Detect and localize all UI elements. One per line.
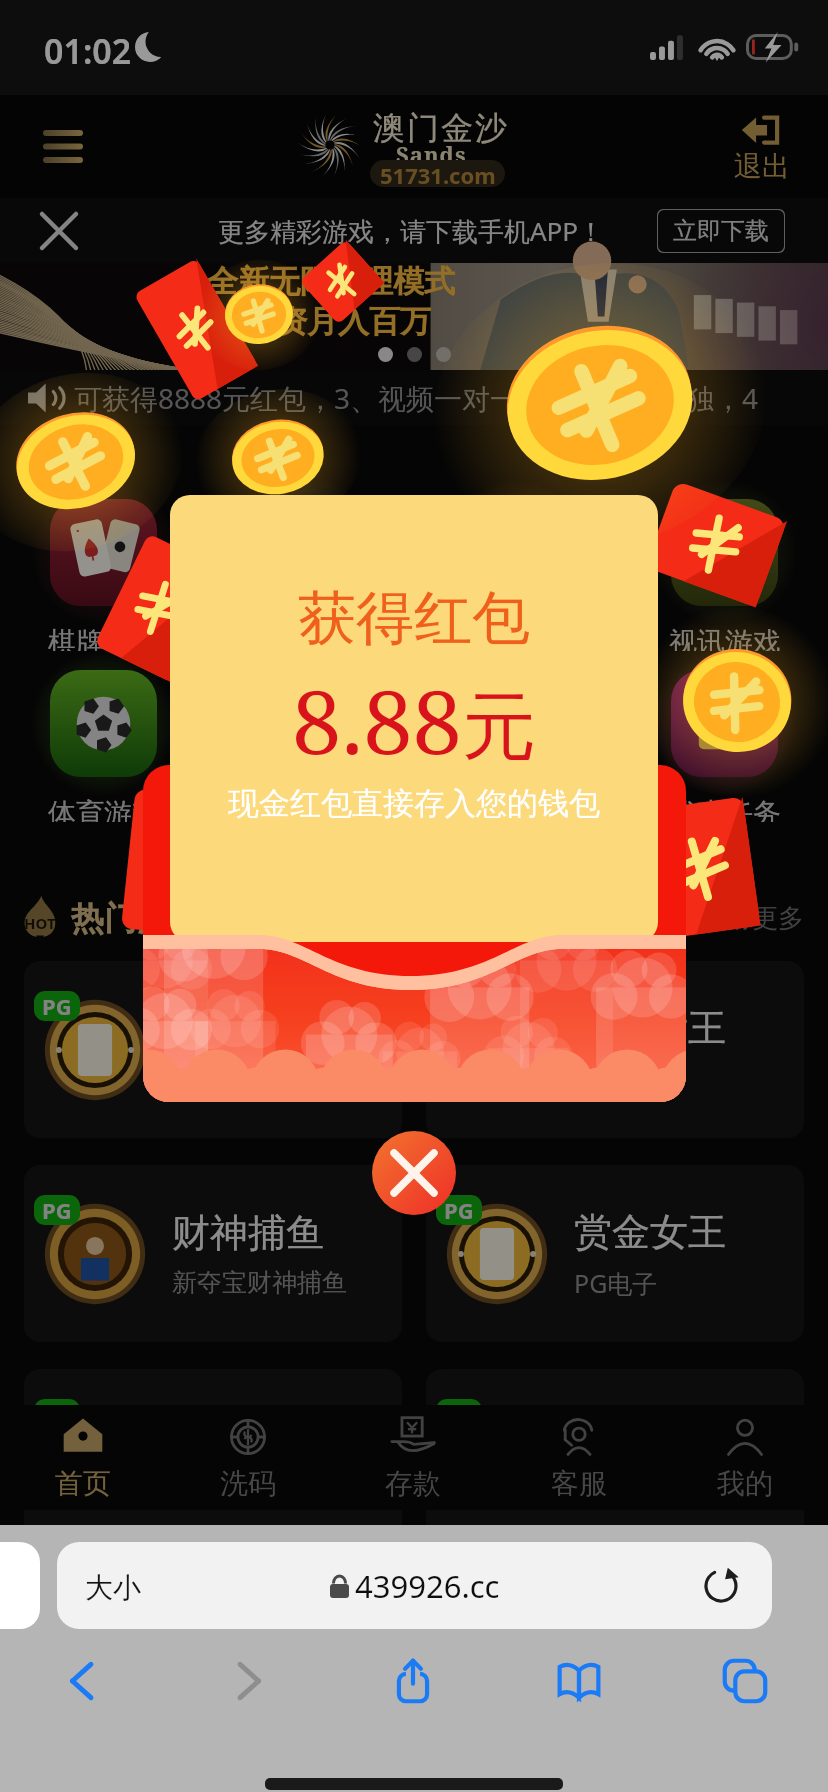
button[interactable]: 客服 <box>496 1405 662 1510</box>
staticText: 右滑更多 <box>700 902 804 935</box>
staticText: 客服 <box>551 1466 607 1501</box>
button[interactable]: Tabs <box>707 1643 783 1719</box>
staticText: 更多精彩游戏，请下载手机APP！ <box>218 213 605 249</box>
staticText: 优惠任务 <box>669 796 781 822</box>
staticText: 51731.com <box>380 160 496 187</box>
staticText: PG <box>42 991 72 1021</box>
button[interactable]: 洗码 <box>165 1405 330 1510</box>
staticText: PG <box>444 991 474 1021</box>
staticText: PG <box>42 1195 72 1225</box>
staticText: 获得红包 <box>298 582 530 655</box>
button[interactable]: PG <box>426 1165 804 1342</box>
button[interactable]: 我的 <box>662 1405 828 1510</box>
staticText: PG电子 <box>172 1470 256 1504</box>
staticText: 439926.cc <box>355 1565 500 1607</box>
staticText: 糖果派对 <box>172 1412 324 1460</box>
staticText: 8.88 <box>292 660 462 780</box>
staticText: 存款 <box>385 1466 441 1501</box>
staticText: 投资月入百万 <box>245 302 431 341</box>
staticText: 赏金女王 <box>574 1208 726 1256</box>
staticText: 澳门金沙 <box>372 108 508 148</box>
staticText: 彩票游戏 <box>462 625 574 651</box>
button[interactable]: 视讯游戏 <box>621 480 828 651</box>
staticText: 财神捕鱼 <box>172 1209 324 1257</box>
staticText: 新夺宝财神捕鱼 <box>172 1267 347 1298</box>
button[interactable]: 捕鱼游戏 <box>207 651 414 822</box>
button[interactable]: 电子游戏 <box>207 480 414 651</box>
staticText: 电子游戏 <box>255 625 367 651</box>
staticText: 热门游戏 <box>71 898 203 940</box>
button[interactable]: Bookmarks <box>541 1643 617 1719</box>
staticText: 我的 <box>717 1466 773 1501</box>
button[interactable]: Reload <box>696 1561 746 1611</box>
button[interactable]: 优惠任务 <box>621 651 828 822</box>
button[interactable]: 立即下载 <box>657 209 785 253</box>
button[interactable]: 棋牌游戏 <box>0 480 207 651</box>
staticText: 全新无限代理模式 <box>207 262 455 301</box>
staticText: 赏金女王 <box>574 1004 726 1052</box>
staticText: 代理加盟 <box>462 796 574 822</box>
button[interactable]: 退出 <box>718 109 806 195</box>
staticText: 捕鱼游戏 <box>255 796 367 822</box>
button[interactable]: Share <box>375 1643 451 1719</box>
button[interactable]: 彩票游戏 <box>414 480 621 651</box>
button[interactable]: PG <box>426 1369 804 1546</box>
staticText: 退出 <box>734 149 790 184</box>
staticText: 大小 <box>85 1570 141 1605</box>
button[interactable]: PG <box>426 961 804 1138</box>
button[interactable]: 大小 <box>57 1542 772 1629</box>
staticText: 捕鱼游戏 <box>574 1471 674 1502</box>
staticText: 体育游戏 <box>48 796 160 822</box>
staticText: 首页 <box>55 1466 111 1501</box>
staticText: 麻将胡了 <box>172 1004 324 1052</box>
staticText: PG电子 <box>574 1062 658 1096</box>
staticText: 01:02 <box>44 28 132 74</box>
staticText: 现金红包直接存入您的钱包 <box>228 784 600 823</box>
staticText: PG电子 <box>574 1266 658 1300</box>
button[interactable]: PG <box>24 961 402 1138</box>
button[interactable]: 代理加盟 <box>414 651 621 822</box>
staticText: 棋牌游戏 <box>48 625 160 651</box>
staticText: 视讯游戏 <box>669 625 781 651</box>
staticText: 元 <box>462 681 536 774</box>
staticText: 立即下载 <box>673 216 769 246</box>
button[interactable]: Forward <box>210 1643 286 1719</box>
staticText: PG <box>42 1399 72 1429</box>
button[interactable]: Close banner <box>26 205 92 257</box>
button[interactable]: PG <box>24 1165 402 1342</box>
button[interactable]: PG <box>24 1369 402 1546</box>
button[interactable]: Back <box>45 1643 121 1719</box>
button[interactable]: 体育游戏 <box>0 651 207 822</box>
staticText: 黄金渔场 <box>574 1413 726 1461</box>
staticText: PG <box>444 1399 474 1429</box>
staticText: PG <box>444 1195 474 1225</box>
button[interactable]: 存款 <box>330 1405 496 1510</box>
staticText: HOT <box>24 913 56 933</box>
staticText: 洗码 <box>220 1466 276 1501</box>
button[interactable]: Menu <box>26 117 100 175</box>
button[interactable]: 首页 <box>0 1405 165 1510</box>
staticText: 可获得8888元红包，3、视频一对一裸聊，不在孤独，4 <box>74 379 759 417</box>
button[interactable]: Close <box>372 1131 456 1215</box>
staticText: Sands <box>396 139 467 169</box>
